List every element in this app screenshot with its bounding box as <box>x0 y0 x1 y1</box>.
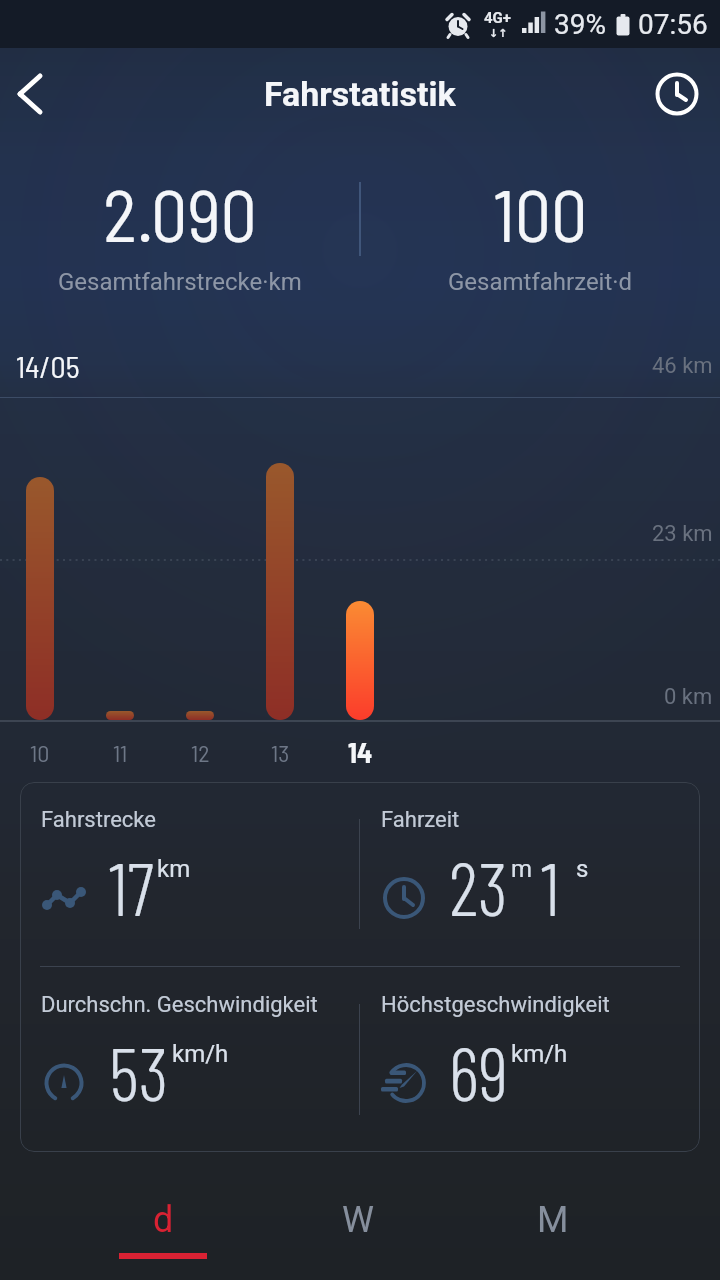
button[interactable]: W <box>260 1162 455 1280</box>
staticText: 2.090 <box>103 170 257 256</box>
staticText: 23 km <box>652 521 713 547</box>
staticText: 07:56 <box>638 8 708 41</box>
staticText: 13 <box>271 738 290 767</box>
staticText: 1 <box>541 842 560 931</box>
button[interactable]: Fahrstrecke <box>20 782 359 966</box>
staticText: 23 <box>449 842 508 931</box>
staticText: M <box>537 1199 569 1241</box>
staticText: 53 <box>109 1027 169 1116</box>
staticText: 39% <box>554 8 606 41</box>
staticText: Höchstgeschwindigkeit <box>381 992 610 1018</box>
button[interactable]: Durchschn. Geschwindigkeit <box>20 967 359 1152</box>
staticText: 100 <box>493 170 588 256</box>
staticText: km/h <box>511 1040 568 1068</box>
staticText: Fahrstatistik <box>264 74 456 114</box>
staticText: km <box>157 855 191 883</box>
staticText: 11 <box>113 738 128 767</box>
staticText: 12 <box>191 738 210 767</box>
staticText: ↓↑ <box>489 27 508 40</box>
staticText: Gesamtfahrstrecke·km <box>58 268 302 296</box>
staticText: 14/05 <box>16 348 80 384</box>
button[interactable]: Höchstgeschwindigkeit <box>360 967 700 1152</box>
staticText: 10 <box>30 738 50 767</box>
staticText: Fahrstrecke <box>41 807 156 833</box>
button[interactable]: d <box>66 1162 260 1280</box>
staticText: 4G+ <box>484 9 512 27</box>
button[interactable]: Back <box>0 63 62 125</box>
staticText: Fahrzeit <box>381 807 460 833</box>
staticText: s <box>576 855 589 883</box>
staticText: 46 km <box>652 353 713 379</box>
staticText: 69 <box>449 1027 508 1116</box>
staticText: m <box>511 855 533 883</box>
staticText: km/h <box>172 1040 229 1068</box>
staticText: 14 <box>348 735 373 769</box>
staticText: 17 <box>109 842 154 931</box>
button[interactable]: History <box>638 53 720 135</box>
button[interactable]: Fahrzeit <box>360 782 700 966</box>
staticText: W <box>342 1199 374 1241</box>
staticText: Durchschn. Geschwindigkeit <box>41 992 318 1018</box>
staticText: Gesamtfahrzeit·d <box>448 268 633 296</box>
staticText: d <box>153 1199 174 1241</box>
button[interactable]: M <box>455 1162 650 1280</box>
staticText: 0 km <box>664 684 713 710</box>
